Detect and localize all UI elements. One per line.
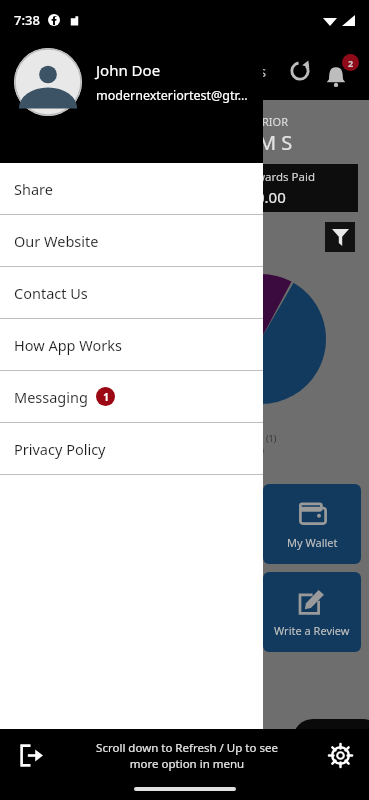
button[interactable]: Messaging	[0, 371, 263, 422]
button[interactable]: Share	[0, 163, 263, 214]
staticText: How App Works	[14, 335, 122, 355]
staticText: Contact Us	[14, 283, 88, 303]
staticText: Scroll down to Refresh / Up to see more …	[96, 740, 278, 771]
button[interactable]: Filter	[325, 222, 355, 252]
staticText: st (1)	[256, 432, 277, 444]
button[interactable]: Our Website	[0, 215, 263, 266]
button[interactable]: Log out	[0, 729, 62, 781]
staticText: ms	[245, 61, 267, 81]
button[interactable]: wards Paid	[220, 164, 358, 212]
staticText: 1	[103, 390, 109, 404]
staticText: 1)	[256, 444, 264, 456]
button[interactable]: How App Works	[0, 319, 263, 370]
button[interactable]: My Wallet	[263, 484, 361, 564]
staticText: Our Website	[14, 231, 99, 251]
staticText: wards Paid	[256, 169, 316, 185]
staticText: M S	[258, 129, 293, 156]
staticText: modernexteriortest@gtr…	[96, 87, 248, 104]
button[interactable]: Call or message	[293, 719, 369, 759]
button[interactable]: Notifications	[325, 54, 359, 88]
staticText: Share	[14, 179, 53, 199]
staticText: 2	[348, 57, 354, 69]
staticText: John Doe	[96, 60, 161, 80]
staticText: Privacy Policy	[14, 439, 106, 459]
button[interactable]: Refresh	[285, 56, 315, 86]
button[interactable]: Contact Us	[0, 267, 263, 318]
staticText: Messaging	[14, 387, 88, 407]
staticText: 7:38	[14, 11, 40, 29]
staticText: My Wallet	[287, 535, 338, 550]
button[interactable]: Write a Review	[263, 572, 361, 652]
staticText: RIOR	[262, 114, 289, 129]
staticText: Write a Review	[274, 623, 350, 638]
staticText: 0.00	[256, 187, 286, 207]
button[interactable]: Settings	[311, 729, 369, 781]
button[interactable]: Privacy Policy	[0, 423, 263, 474]
button[interactable]: John Doe	[0, 0, 263, 163]
